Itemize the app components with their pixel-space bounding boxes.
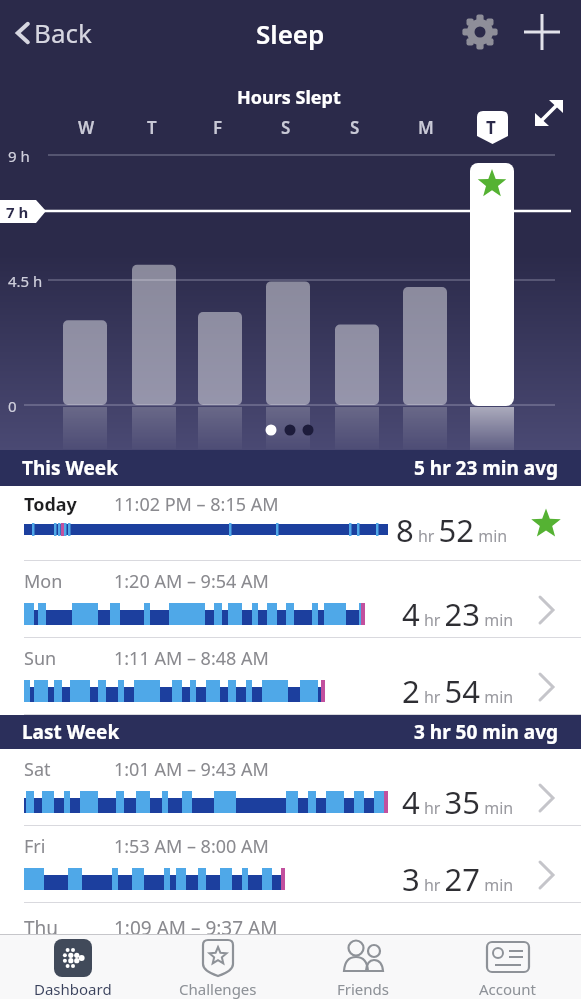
staticText: 0 bbox=[8, 396, 17, 416]
staticText: Account bbox=[479, 979, 537, 999]
staticText: 1:20 AM – 9:54 AM bbox=[114, 569, 269, 594]
button[interactable] bbox=[528, 94, 570, 136]
staticText: 9 h bbox=[8, 146, 30, 166]
staticText: 11:02 PM – 8:15 AM bbox=[114, 492, 279, 517]
staticText: 1:01 AM – 9:43 AM bbox=[114, 757, 269, 782]
staticText: 3 hr 27 min bbox=[402, 858, 514, 900]
staticText: 4 hr 23 min bbox=[402, 593, 514, 635]
staticText: Sun bbox=[24, 646, 57, 671]
button[interactable]: Today bbox=[0, 486, 581, 560]
staticText: Back bbox=[34, 15, 92, 50]
button[interactable]: Friends bbox=[290, 935, 435, 999]
staticText: 1:53 AM – 8:00 AM bbox=[114, 834, 269, 859]
staticText: Challenges bbox=[179, 979, 257, 999]
staticText: 5 hr 23 min avg bbox=[414, 455, 559, 481]
staticText: Today bbox=[24, 492, 77, 517]
button[interactable]: Fri bbox=[0, 826, 581, 902]
staticText: Dashboard bbox=[34, 979, 112, 999]
button[interactable]: Challenges bbox=[145, 935, 290, 999]
staticText: 1:09 AM – 9:37 AM bbox=[114, 915, 278, 941]
staticText: S bbox=[281, 116, 291, 139]
button[interactable]: Account bbox=[435, 935, 580, 999]
staticText: 3 hr 50 min avg bbox=[414, 719, 559, 745]
staticText: 2 hr 54 min bbox=[402, 670, 514, 712]
staticText: M bbox=[418, 116, 434, 139]
staticText: 1:11 AM – 8:48 AM bbox=[114, 646, 269, 671]
staticText: S bbox=[350, 116, 360, 139]
button[interactable]: Sun bbox=[0, 638, 581, 714]
staticText: Fri bbox=[24, 834, 46, 859]
staticText: Last Week bbox=[22, 719, 120, 745]
button[interactable] bbox=[460, 12, 500, 52]
staticText: T bbox=[147, 116, 157, 139]
staticText: 7 h bbox=[6, 202, 29, 222]
staticText: T bbox=[486, 116, 496, 139]
staticText: Hours Slept bbox=[237, 85, 341, 110]
staticText: W bbox=[78, 116, 95, 139]
button[interactable]: Mon bbox=[0, 561, 581, 637]
staticText: Thu bbox=[24, 915, 59, 941]
staticText: F bbox=[213, 116, 223, 139]
staticText: Sat bbox=[24, 757, 51, 782]
button[interactable]: Sat bbox=[0, 749, 581, 825]
button[interactable]: Back bbox=[12, 15, 92, 50]
staticText: Sleep bbox=[256, 16, 325, 51]
staticText: Mon bbox=[24, 569, 63, 594]
button[interactable] bbox=[518, 8, 566, 56]
staticText: 4 hr 35 min bbox=[402, 781, 514, 823]
button[interactable]: Dashboard bbox=[0, 935, 145, 999]
staticText: 8 hr 52 min bbox=[396, 509, 508, 551]
staticText: Friends bbox=[337, 979, 389, 999]
staticText: 4.5 h bbox=[8, 271, 43, 291]
staticText: This Week bbox=[22, 455, 118, 481]
